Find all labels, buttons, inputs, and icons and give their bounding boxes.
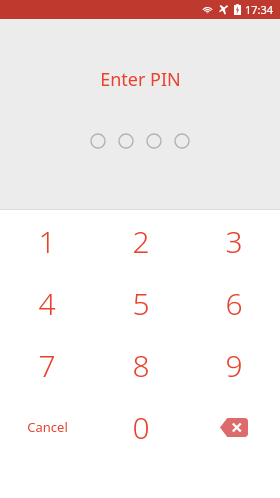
button[interactable]: 0 xyxy=(94,396,187,458)
button[interactable]: 4 xyxy=(0,272,94,334)
staticText: 2 xyxy=(132,221,150,262)
button[interactable]: 5 xyxy=(94,272,187,334)
staticText: 6 xyxy=(225,283,243,324)
staticText: 17:34 xyxy=(245,2,274,17)
button[interactable]: 6 xyxy=(187,272,280,334)
staticText: 9 xyxy=(225,345,243,386)
staticText: 1 xyxy=(38,221,56,262)
button[interactable]: Backspace xyxy=(187,396,280,458)
button[interactable]: 8 xyxy=(94,334,187,396)
staticText: Enter PIN xyxy=(100,67,181,92)
staticText: Cancel xyxy=(27,418,68,436)
staticText: 4 xyxy=(38,283,56,324)
staticText: 0 xyxy=(132,407,150,448)
button[interactable]: Cancel xyxy=(0,396,94,458)
button[interactable]: 1 xyxy=(0,210,94,272)
staticText: 3 xyxy=(225,221,243,262)
staticText: 5 xyxy=(132,283,150,324)
button[interactable]: 9 xyxy=(187,334,280,396)
button[interactable]: 2 xyxy=(94,210,187,272)
staticText: 8 xyxy=(132,345,150,386)
button[interactable]: 3 xyxy=(187,210,280,272)
button[interactable]: 7 xyxy=(0,334,94,396)
staticText: 7 xyxy=(38,345,56,386)
